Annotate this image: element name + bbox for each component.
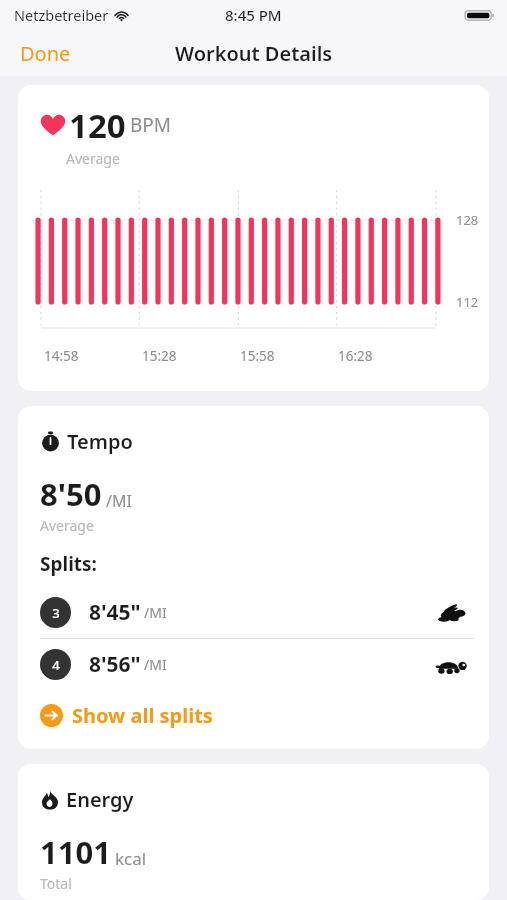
staticText: kcal	[115, 847, 147, 870]
staticText: Tempo	[67, 428, 133, 455]
button[interactable]: 120	[18, 85, 489, 391]
staticText: 15:58	[240, 347, 275, 365]
staticText: 16:28	[338, 347, 373, 365]
staticText: 128	[456, 211, 479, 229]
button[interactable]: Show all splits	[18, 696, 489, 749]
staticText: /MI	[144, 603, 167, 622]
staticText: Done	[20, 40, 71, 67]
staticText: Show all splits	[72, 702, 213, 729]
staticText: Average	[66, 149, 120, 168]
staticText: 4	[52, 656, 60, 674]
button[interactable]: Energy	[18, 764, 489, 900]
other: Slower split	[435, 653, 467, 677]
button[interactable]: Done	[0, 34, 91, 73]
staticText: 14:58	[44, 347, 79, 365]
other: Faster split	[435, 601, 467, 625]
staticText: Average	[40, 516, 94, 535]
button[interactable]: 4	[18, 639, 489, 690]
staticText: BPM	[130, 112, 172, 138]
staticText: 112	[456, 293, 479, 311]
staticText: 120	[69, 103, 126, 148]
staticText: /MI	[144, 655, 167, 674]
staticText: 8'45"	[89, 598, 141, 627]
staticText: Total	[40, 874, 72, 893]
staticText: 8'56"	[89, 650, 141, 679]
staticText: Workout Details	[175, 40, 333, 67]
staticText: 15:28	[142, 347, 177, 365]
staticText: 8:45 PM	[225, 5, 282, 25]
staticText: Energy	[66, 786, 134, 813]
staticText: 8'50	[40, 473, 102, 515]
staticText: 1101	[40, 831, 111, 873]
staticText: Splits:	[40, 551, 97, 577]
staticText: 3	[52, 604, 60, 622]
button[interactable]: 3	[18, 587, 489, 638]
staticText: Netzbetreiber	[14, 5, 109, 25]
staticText: /MI	[106, 490, 132, 512]
